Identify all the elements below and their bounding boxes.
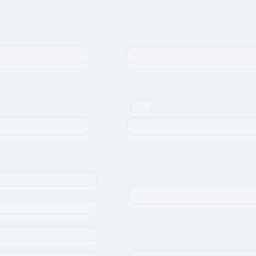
button[interactable] bbox=[131, 100, 152, 112]
button[interactable] bbox=[0, 252, 97, 256]
